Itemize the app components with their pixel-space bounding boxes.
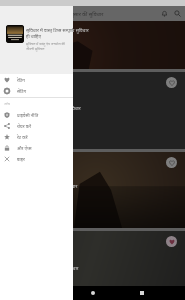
button[interactable]: Recents — [136, 287, 148, 299]
button[interactable]: Favourite — [166, 236, 177, 247]
staticText: रेट करें — [17, 134, 28, 140]
button[interactable]: Notifications — [158, 7, 171, 20]
button[interactable]: बाहर — [0, 153, 73, 164]
staticText: मित्र सुविचार — [58, 265, 79, 271]
staticText: प्राइवेसी नीति — [17, 112, 39, 118]
staticText: और ऐप्स — [17, 145, 32, 151]
staticText: सुविचार में वास्तु ऐप अनमोल की — [26, 41, 65, 46]
staticText: सुविचार में वास्तु टिप्स सम्पूर्ण — [26, 27, 73, 33]
staticText: प्रेम सुविचार — [58, 183, 78, 189]
staticText: बाहर — [17, 156, 25, 162]
button[interactable]: और ऐप्स — [0, 142, 73, 153]
button[interactable]: सेटिंग — [0, 85, 73, 96]
staticText: सेटिंग — [17, 88, 27, 94]
staticText: वास्तु शास्त्र के अनुसार की सुविचार — [40, 10, 104, 17]
button[interactable]: Search — [171, 7, 184, 20]
button[interactable]: Favourite — [166, 157, 177, 168]
staticText: ही चाहिए — [26, 33, 42, 39]
staticText: शेयर करें — [17, 123, 31, 129]
staticText: जीवनी सुविचार — [26, 46, 45, 51]
button[interactable]: सबसे प्रिय सुविचार — [0, 21, 185, 69]
button[interactable]: Favourite — [0, 72, 185, 149]
button[interactable]: Favourite — [0, 231, 185, 286]
staticText: सबसे प्रिय सुविचार — [58, 27, 89, 33]
button[interactable]: प्राइवेसी नीति — [0, 109, 73, 120]
button[interactable]: Favourite — [0, 152, 185, 228]
staticText: माँ के सुविचार — [58, 105, 81, 111]
button[interactable]: Favourite — [166, 77, 177, 88]
staticText: रेटिंग — [17, 77, 25, 83]
staticText: अन्य — [4, 101, 10, 106]
button[interactable]: रेटिंग — [0, 74, 73, 85]
button[interactable]: Home — [87, 287, 99, 299]
button[interactable]: शेयर करें — [0, 120, 73, 131]
button[interactable]: रेट करें — [0, 131, 73, 142]
